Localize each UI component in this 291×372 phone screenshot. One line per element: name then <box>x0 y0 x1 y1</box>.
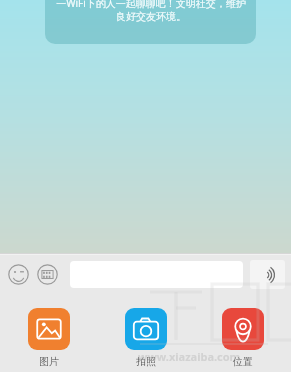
button[interactable]: Emoji <box>6 262 30 286</box>
staticText: 一WiFi下的人一起聊聊吧！文明社交，维护 <box>56 0 246 10</box>
button[interactable]: Voice <box>250 260 285 289</box>
button[interactable]: 位置 <box>194 308 291 368</box>
button[interactable]: Keyboard <box>35 262 59 286</box>
staticText: 良好交友环境。 <box>116 10 186 23</box>
button[interactable]: 拍照 <box>97 308 194 368</box>
staticText: 拍照 <box>136 355 156 368</box>
staticText: www.xiazaiba.com <box>138 349 241 364</box>
staticText: 位置 <box>233 355 253 368</box>
button[interactable]: 图片 <box>0 308 97 368</box>
button[interactable]: 你已加入 ，分店热聊，和同 <box>45 0 256 44</box>
staticText: 图片 <box>39 355 59 368</box>
